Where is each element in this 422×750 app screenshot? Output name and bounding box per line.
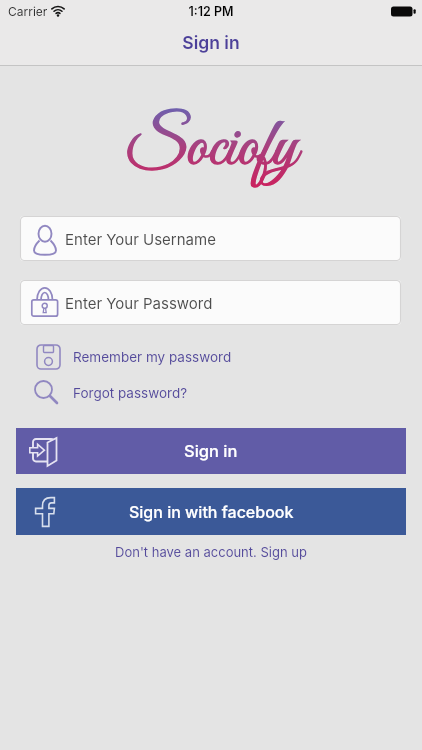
staticText: Sociofy bbox=[0, 108, 422, 191]
button[interactable]: Sign in with facebook bbox=[16, 488, 406, 535]
staticText: Carrier bbox=[8, 4, 48, 19]
button[interactable]: Don't have an account. Sign up bbox=[0, 544, 422, 560]
staticText: Remember my password bbox=[73, 349, 232, 365]
staticText: 1:12 PM bbox=[0, 4, 422, 19]
staticText: Sign in bbox=[184, 441, 238, 461]
staticText: Enter Your Password bbox=[65, 294, 213, 312]
button[interactable]: Enter Your Username bbox=[20, 216, 401, 261]
button[interactable]: Forgot password? bbox=[33, 379, 188, 406]
staticText: Sociofy bbox=[0, 108, 422, 191]
button[interactable]: Remember my password bbox=[36, 344, 232, 370]
staticText: Sign in bbox=[0, 32, 422, 53]
staticText: Sign in with facebook bbox=[129, 502, 294, 521]
staticText: Forgot password? bbox=[73, 385, 188, 401]
button[interactable]: Enter Your Password bbox=[20, 280, 401, 325]
staticText: Enter Your Username bbox=[65, 230, 216, 248]
button[interactable]: Sign in bbox=[16, 428, 406, 474]
